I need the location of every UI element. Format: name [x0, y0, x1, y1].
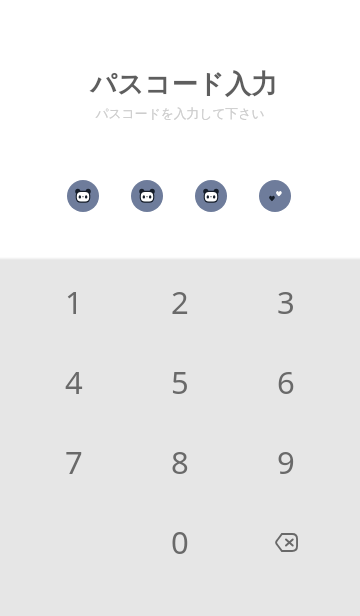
button[interactable]: 5 — [132, 342, 228, 422]
staticText: 8 — [171, 441, 189, 483]
staticText: 1 — [65, 281, 83, 323]
staticText: 2 — [171, 281, 189, 323]
button[interactable]: 7 — [26, 422, 122, 502]
button[interactable]: 3 — [238, 262, 334, 342]
button[interactable]: 6 — [238, 342, 334, 422]
staticText: 0 — [171, 521, 189, 563]
button[interactable]: 9 — [238, 422, 334, 502]
staticText: 3 — [277, 281, 295, 323]
staticText: パスコードを入力して下さい — [95, 106, 265, 122]
button[interactable]: 2 — [132, 262, 228, 342]
staticText: 5 — [171, 361, 189, 403]
staticText: 7 — [65, 441, 83, 483]
button[interactable]: 0 — [132, 502, 228, 582]
staticText: 9 — [277, 441, 295, 483]
staticText: 4 — [65, 361, 83, 403]
staticText: パスコード入力 — [90, 68, 278, 101]
staticText: 6 — [277, 361, 295, 403]
button[interactable]: 8 — [132, 422, 228, 502]
button[interactable]: 4 — [26, 342, 122, 422]
button[interactable]: Backspace — [238, 502, 334, 582]
button[interactable]: 1 — [26, 262, 122, 342]
